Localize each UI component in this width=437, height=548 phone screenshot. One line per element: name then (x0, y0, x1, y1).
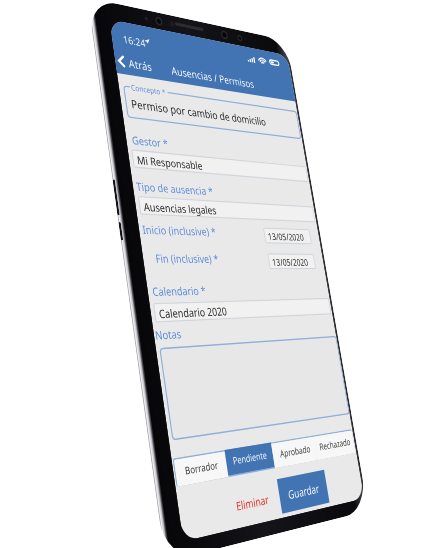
button[interactable]: Aprobado (271, 437, 318, 468)
button[interactable]: Guardar (277, 470, 329, 514)
staticText: Concepto * (130, 82, 166, 98)
button[interactable] (123, 85, 301, 139)
staticText: Aprobado (279, 443, 312, 461)
button[interactable]: Ausencias legales (138, 196, 316, 222)
button[interactable]: Eliminar (229, 483, 276, 521)
staticText: Borrador (184, 459, 219, 479)
staticText: Tipo de ausencia * (135, 178, 215, 198)
button[interactable]: Calendario 2020 (153, 298, 332, 323)
button[interactable]: Mi Responsable (131, 149, 309, 182)
staticText: Mi Responsable (136, 152, 204, 172)
staticText: Fin (inclusive) * (154, 250, 219, 265)
staticText: Inicio (inclusive) * (141, 222, 217, 238)
button[interactable]: Atrás (115, 50, 161, 79)
button[interactable]: Borrador (174, 451, 229, 487)
staticText: Calendario 2020 (158, 303, 228, 321)
staticText: Pendiente (232, 449, 268, 469)
staticText: Notas (154, 326, 182, 343)
button[interactable] (159, 336, 350, 441)
staticText: Rechazado (318, 436, 351, 454)
staticText: 16:24 (122, 31, 147, 50)
staticText: Ausencias / Permisos (170, 63, 256, 92)
button[interactable]: Rechazado (314, 430, 356, 460)
button[interactable]: Pendiente (224, 442, 275, 476)
staticText: Permiso por cambio de domicilio (130, 96, 267, 129)
staticText: Guardar (287, 480, 321, 503)
staticText: Atrás (128, 56, 154, 75)
staticText: Ausencias legales (143, 199, 218, 217)
staticText: Calendario * (151, 283, 207, 299)
staticText: 13/05/2020 (271, 256, 309, 268)
staticText: Gestor * (131, 132, 169, 150)
staticText: Eliminar (235, 491, 270, 514)
button[interactable]: 13/05/2020 (267, 253, 316, 269)
staticText: 13/05/2020 (267, 230, 305, 243)
button[interactable]: 13/05/2020 (263, 227, 312, 244)
